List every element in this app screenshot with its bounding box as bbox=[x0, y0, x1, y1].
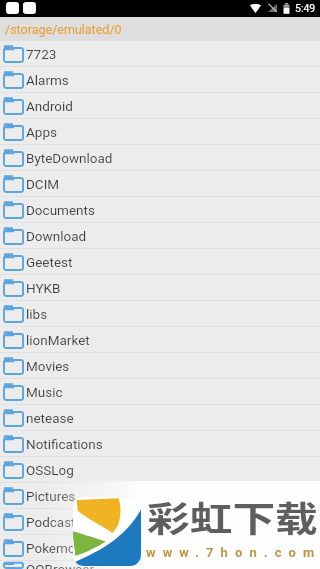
staticText: /storage/emulated/0 bbox=[5, 22, 122, 37]
staticText: Apps bbox=[26, 124, 57, 140]
button[interactable]: libs bbox=[0, 301, 320, 327]
button[interactable]: Download bbox=[0, 223, 320, 249]
button[interactable]: Podcasts bbox=[0, 509, 320, 535]
staticText: Alarms bbox=[26, 72, 69, 88]
staticText: OSSLog bbox=[26, 462, 74, 478]
button[interactable]: Alarms bbox=[0, 67, 320, 93]
button[interactable]: DCIM bbox=[0, 171, 320, 197]
staticText: 彩虹下载 bbox=[147, 491, 319, 542]
button[interactable]: Documents bbox=[0, 197, 320, 223]
button[interactable]: Android bbox=[0, 93, 320, 119]
staticText: www.7hon.com bbox=[146, 545, 320, 560]
staticText: 7723 bbox=[26, 46, 57, 62]
button[interactable]: 7723 bbox=[0, 41, 320, 67]
button[interactable]: Notifications bbox=[0, 431, 320, 457]
staticText: ByteDownload bbox=[26, 150, 113, 166]
staticText: Music bbox=[26, 384, 63, 400]
button[interactable]: Geetest bbox=[0, 249, 320, 275]
staticText: QQBrowser bbox=[26, 561, 94, 569]
button[interactable]: netease bbox=[0, 405, 320, 431]
button[interactable]: Apps bbox=[0, 119, 320, 145]
staticText: Download bbox=[26, 228, 87, 244]
button[interactable]: Movies bbox=[0, 353, 320, 379]
button[interactable]: ByteDownload bbox=[0, 145, 320, 171]
staticText: Documents bbox=[26, 202, 95, 218]
staticText: Notifications bbox=[26, 436, 103, 452]
button[interactable]: HYKB bbox=[0, 275, 320, 301]
button[interactable]: Pictures bbox=[0, 483, 320, 509]
staticText: Android bbox=[26, 98, 73, 114]
staticText: libs bbox=[26, 306, 48, 322]
staticText: Pictures bbox=[26, 488, 76, 504]
button[interactable]: /storage/emulated/0 bbox=[0, 17, 320, 41]
staticText: Geetest bbox=[26, 254, 73, 270]
staticText: Pokemon bbox=[26, 540, 83, 556]
button[interactable]: QQBrowser bbox=[0, 561, 320, 569]
staticText: 5:49 bbox=[295, 2, 316, 14]
button[interactable]: lionMarket bbox=[0, 327, 320, 353]
staticText: lionMarket bbox=[26, 332, 90, 348]
button[interactable]: Music bbox=[0, 379, 320, 405]
staticText: HYKB bbox=[26, 280, 61, 296]
staticText: Movies bbox=[26, 358, 70, 374]
button[interactable]: Pokemon bbox=[0, 535, 320, 561]
staticText: netease bbox=[26, 410, 74, 426]
button[interactable]: OSSLog bbox=[0, 457, 320, 483]
staticText: DCIM bbox=[26, 176, 60, 192]
staticText: Podcasts bbox=[26, 514, 83, 530]
